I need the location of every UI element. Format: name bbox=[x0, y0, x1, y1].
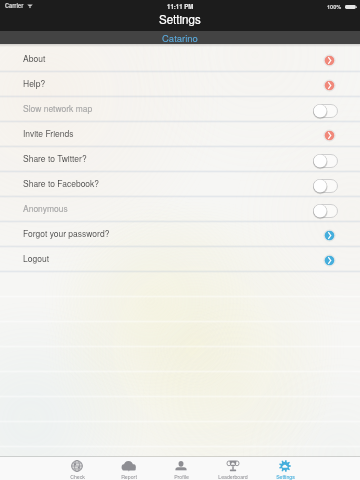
button[interactable]: Settings bbox=[259, 457, 311, 480]
staticText: Profile bbox=[174, 473, 189, 480]
button[interactable]: Open bbox=[323, 79, 336, 92]
button[interactable]: Open bbox=[323, 254, 336, 267]
button[interactable]: Catarino bbox=[154, 31, 206, 44]
staticText: Anonymous bbox=[23, 202, 68, 214]
staticText: Slow network map bbox=[23, 102, 93, 114]
button[interactable]: Leaderboard bbox=[207, 457, 259, 480]
button[interactable]: Open bbox=[323, 54, 336, 67]
button[interactable]: Toggle bbox=[313, 204, 338, 218]
staticText: Forgot your password? bbox=[23, 227, 110, 239]
button[interactable]: Toggle bbox=[313, 179, 338, 193]
button[interactable]: About bbox=[0, 48, 360, 73]
staticText: About bbox=[23, 52, 46, 64]
staticText: Invite Friends bbox=[23, 127, 74, 139]
staticText: 11:11 PM bbox=[167, 2, 194, 11]
button[interactable]: Slow network map bbox=[0, 98, 360, 123]
staticText: 100% bbox=[327, 3, 342, 11]
staticText: Catarino bbox=[162, 31, 198, 44]
staticText: Check bbox=[70, 473, 85, 480]
staticText: Settings bbox=[159, 11, 201, 28]
button[interactable]: Anonymous bbox=[0, 198, 360, 223]
button[interactable]: Report bbox=[103, 457, 155, 480]
button[interactable]: Share to Facebook? bbox=[0, 173, 360, 198]
button[interactable]: Open bbox=[323, 229, 336, 242]
button[interactable]: Open bbox=[323, 129, 336, 142]
button[interactable]: Invite Friends bbox=[0, 123, 360, 148]
staticText: Settings bbox=[276, 473, 295, 480]
button[interactable]: Check bbox=[51, 457, 103, 480]
staticText: Share to Facebook? bbox=[23, 177, 100, 189]
button[interactable]: Toggle bbox=[313, 104, 338, 118]
button[interactable]: Logout bbox=[0, 248, 360, 273]
staticText: Leaderboard bbox=[218, 473, 248, 480]
button[interactable]: Share to Twitter? bbox=[0, 148, 360, 173]
staticText: Logout bbox=[23, 252, 49, 264]
button[interactable]: Toggle bbox=[313, 154, 338, 168]
button[interactable]: Forgot your password? bbox=[0, 223, 360, 248]
other: Wi-Fi bbox=[27, 4, 33, 8]
staticText: Report bbox=[121, 473, 137, 480]
button[interactable]: Help? bbox=[0, 73, 360, 98]
staticText: Share to Twitter? bbox=[23, 152, 87, 164]
staticText: Help? bbox=[23, 77, 46, 89]
button[interactable]: Profile bbox=[155, 457, 207, 480]
staticText: Carrier bbox=[5, 2, 24, 10]
